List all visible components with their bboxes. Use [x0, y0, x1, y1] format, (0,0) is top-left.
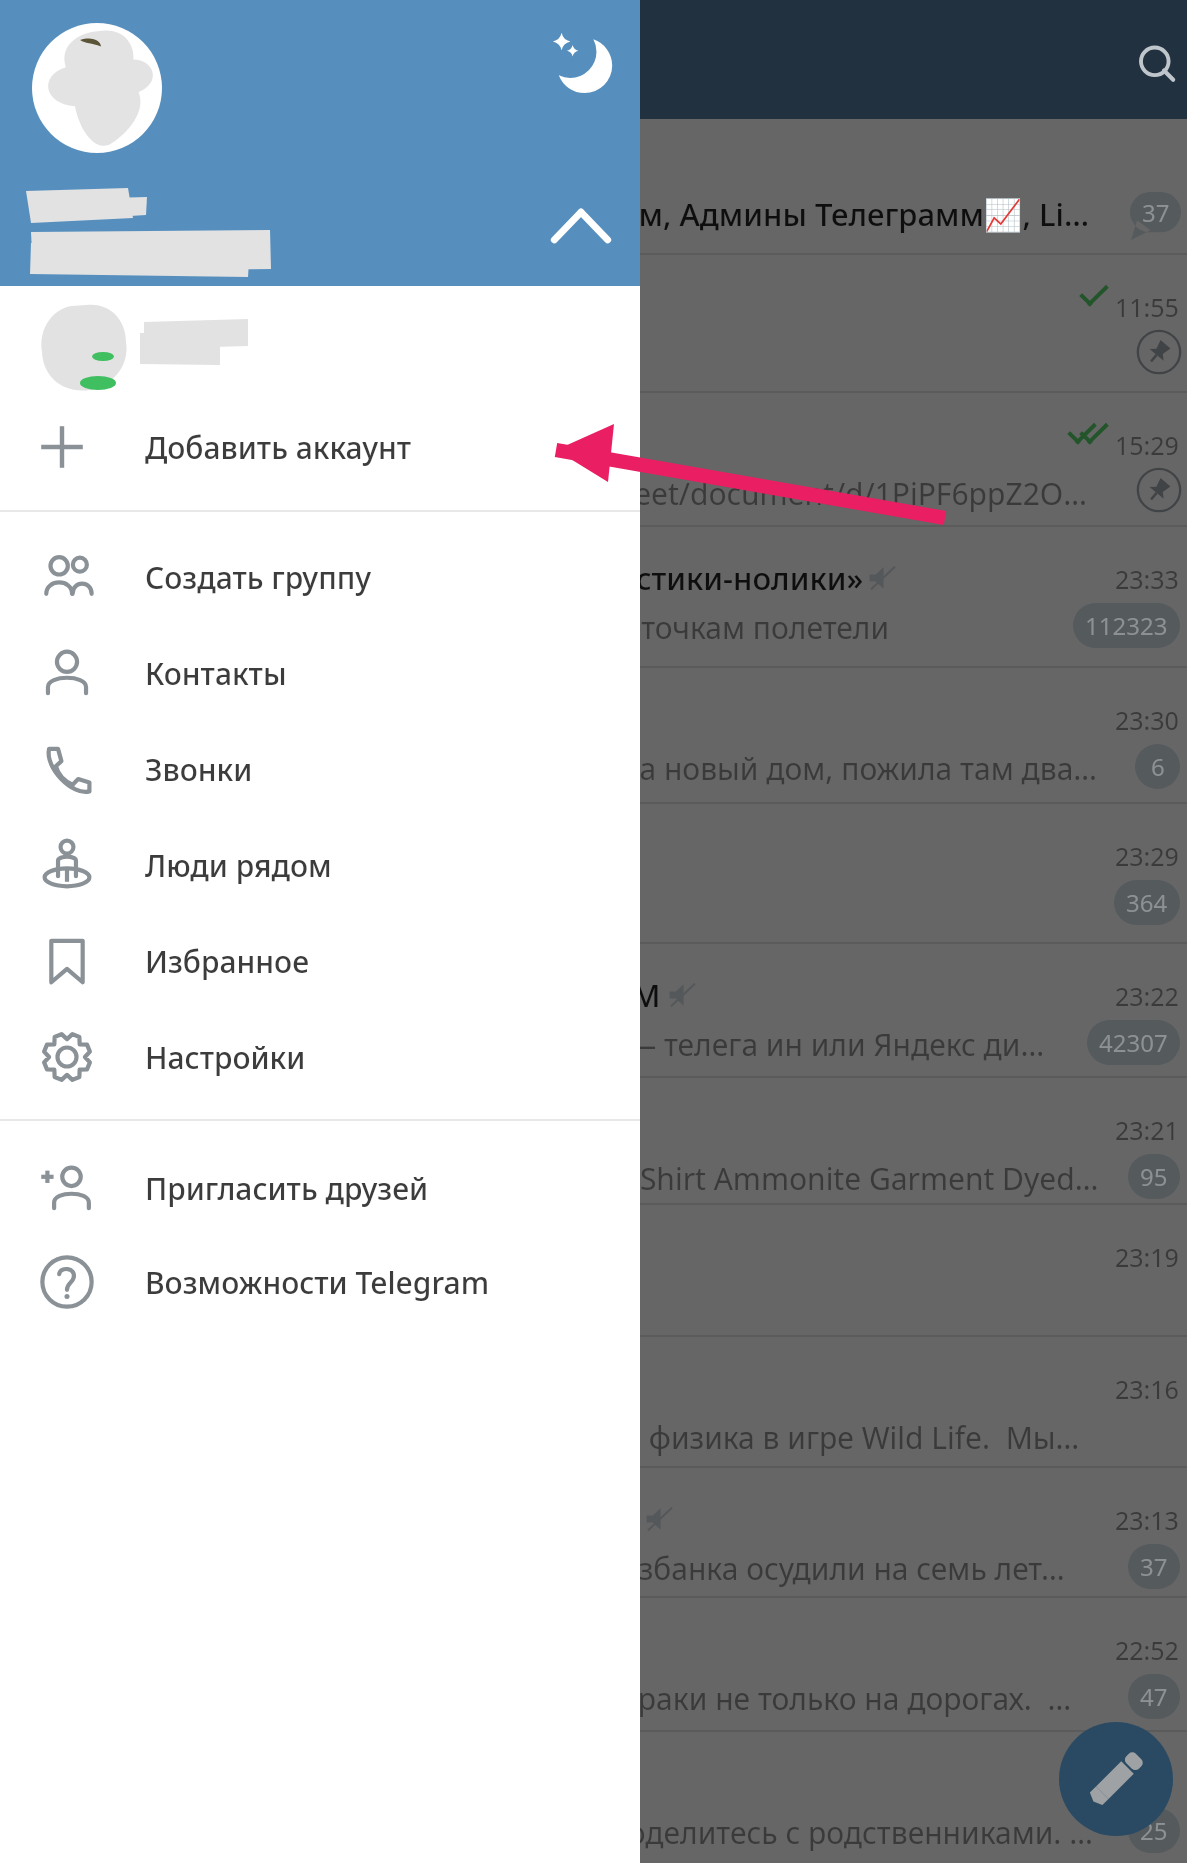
staticText: 37 — [1140, 1550, 1168, 1583]
staticText: Сохранённые — [150, 285, 1095, 327]
button[interactable]: Настройки — [0, 1009, 640, 1105]
button[interactable]: Expand accounts — [535, 180, 627, 272]
staticText: 23:33 — [1115, 562, 1179, 596]
staticText: 23:19 — [1115, 1240, 1179, 1274]
staticText: Аня: ребята, а что лучше зайдёт — телега… — [150, 1024, 1050, 1065]
staticText: 23:13 — [1115, 1503, 1179, 1537]
staticText: Бывшего руководителя банка «Газбанка осу… — [150, 1548, 1102, 1589]
staticText: Возможности Telegram — [145, 1262, 490, 1303]
button[interactable]: Контакты — [0, 625, 640, 721]
button[interactable]: New message — [1059, 1722, 1173, 1836]
staticText: Скидки — [150, 1108, 1095, 1150]
button[interactable]: Сохранённые — [0, 255, 1187, 393]
staticText: 11:55 — [1115, 290, 1179, 324]
staticText: Рабочие файлы — [150, 423, 1095, 465]
staticText: Пригласить друзей — [145, 1168, 429, 1209]
button[interactable]: Люди рядом — [0, 817, 640, 913]
staticText: Избранное — [145, 941, 309, 982]
staticText: 23:16 — [1115, 1372, 1179, 1406]
staticText: Люди рядом — [145, 845, 332, 886]
staticText: 23:21 — [1115, 1113, 1179, 1147]
staticText: Stone Island Outlet | Скидка 40%: Shirt … — [150, 1158, 1102, 1199]
staticText: Контакты — [145, 653, 287, 694]
staticText: 22:52 — [1115, 1633, 1179, 1667]
staticText: 112323 — [1085, 609, 1168, 642]
button[interactable]: Финансы — [0, 1468, 1187, 1598]
button[interactable]: Добавить аккаунт — [0, 398, 640, 496]
staticText: Интересное — [150, 834, 1095, 876]
staticText: Технологии — [150, 1235, 1095, 1277]
staticText: Маркетинг, реклама и таргет, СМ — [150, 974, 1095, 1016]
staticText: 37 — [1142, 196, 1170, 229]
staticText: Добавить аккаунт — [145, 427, 412, 468]
staticText: Мама: представляешь, она купила новый до… — [150, 748, 1102, 789]
button[interactable]: Звонки — [0, 721, 640, 817]
button[interactable]: Profile photo — [32, 23, 162, 153]
button[interactable]: Чат большого сообщества «Крестики-нолики… — [0, 527, 1187, 668]
button[interactable]: Маркетинг, реклама и таргет, СМ — [0, 944, 1187, 1078]
staticText: 15:29 — [1115, 428, 1179, 462]
button[interactable]: Игры — [0, 1337, 1187, 1468]
staticText: Важная информация для всех! Поделитесь с… — [150, 1812, 1102, 1853]
button[interactable]: Советы — [0, 1732, 1187, 1863]
staticText: https://docs.google.com/spreadsheet/docu… — [150, 473, 1102, 514]
staticText: Чат большого сообщества «Крестики-нолики… — [150, 557, 1095, 599]
staticText: 47 — [1140, 1680, 1168, 1713]
staticText: 6 — [1151, 750, 1165, 783]
button[interactable]: Toggle night mode — [534, 14, 626, 106]
staticText: Чаты: СММ, Таргет, Реклама, Адм, Админы … — [150, 193, 1095, 235]
staticText: 23:29 — [1115, 839, 1179, 873]
staticText: 42307 — [1099, 1026, 1168, 1059]
staticText: Сергей: и по брёвнышкам, по досточкам по… — [150, 607, 1102, 648]
button[interactable]: Чаты: СММ, Таргет, Реклама, Адм, Админы … — [0, 119, 1187, 255]
button[interactable] — [0, 286, 640, 398]
staticText: Советы — [150, 1762, 1095, 1804]
staticText: Игры — [150, 1367, 1095, 1409]
staticText: Настройки — [145, 1037, 306, 1078]
staticText: 95 — [1140, 1160, 1168, 1193]
staticText: 23:30 — [1115, 703, 1179, 737]
button[interactable]: Пригласить друзей — [0, 1141, 640, 1235]
staticText: Звонки — [145, 749, 253, 790]
button[interactable]: Мама — [0, 668, 1187, 804]
staticText: Авто — [150, 1628, 1095, 1670]
staticText: 25 — [1140, 1814, 1168, 1847]
staticText: Финансы — [150, 1498, 1095, 1540]
button[interactable]: Технологии — [0, 1205, 1187, 1337]
staticText: Мама — [150, 698, 1095, 740]
button[interactable]: Search — [1112, 19, 1187, 111]
staticText: Новые камеры начали ловить штраки не тол… — [150, 1678, 1102, 1719]
staticText: В новом патче заметно улучшена физика в … — [150, 1417, 1102, 1458]
button[interactable]: Open navigation drawer — [14, 14, 106, 106]
button[interactable]: Скидки — [0, 1078, 1187, 1205]
staticText: Создать группу — [145, 557, 372, 598]
button[interactable]: Создать группу — [0, 529, 640, 625]
button[interactable]: Рабочие файлы — [0, 393, 1187, 527]
button[interactable]: Избранное — [0, 913, 640, 1009]
staticText: 364 — [1126, 886, 1168, 919]
button[interactable]: Авто — [0, 1598, 1187, 1732]
button[interactable]: Возможности Telegram — [0, 1235, 640, 1329]
staticText: 23:22 — [1115, 979, 1179, 1013]
button[interactable]: Интересное — [0, 804, 1187, 944]
